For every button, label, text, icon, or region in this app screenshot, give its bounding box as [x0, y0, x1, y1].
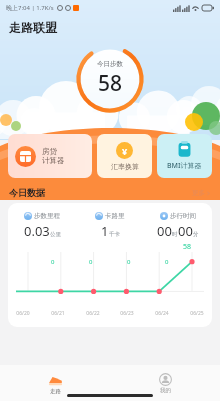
staticText: 计算器: [42, 156, 65, 165]
staticText: 千卡: [109, 231, 120, 238]
staticText: 今日数据: [9, 187, 45, 198]
staticText: 06/21: [51, 310, 65, 317]
button[interactable]: 更多: [192, 189, 211, 197]
staticText: 今日步数: [97, 60, 123, 68]
staticText: 公里: [50, 231, 61, 238]
staticText: 晚上7:04 | 1.7K/s: [6, 4, 54, 12]
staticText: 06/20: [16, 310, 30, 317]
staticText: 汇率换算: [111, 162, 139, 171]
staticText: 0: [89, 258, 93, 266]
staticText: 0: [165, 258, 169, 266]
staticText: 0.03: [24, 222, 50, 240]
button[interactable]: BMI计算器: [157, 134, 212, 178]
staticText: 房贷: [42, 147, 57, 156]
staticText: BMI计算器: [167, 161, 202, 171]
staticText: 1: [101, 222, 109, 240]
staticText: 步行时间: [170, 212, 196, 220]
button[interactable]: ¥: [97, 134, 152, 178]
staticText: 58: [183, 242, 192, 252]
staticText: 卡路里: [105, 212, 125, 220]
staticText: 06/25: [190, 310, 204, 317]
button[interactable]: 走路: [0, 365, 110, 401]
button[interactable]: 房贷: [8, 134, 92, 178]
staticText: 0: [51, 258, 55, 266]
staticText: 走路联盟: [9, 20, 57, 35]
staticText: ¥: [122, 145, 128, 157]
staticText: 00: [178, 222, 193, 240]
staticText: 00: [157, 222, 172, 240]
staticText: 时: [172, 231, 178, 238]
staticText: 06/24: [155, 310, 169, 317]
staticText: 06/22: [86, 310, 100, 317]
staticText: 走路: [50, 388, 61, 395]
staticText: 0: [127, 258, 131, 266]
staticText: 步数里程: [34, 212, 60, 220]
staticText: 58: [98, 69, 123, 98]
staticText: 我的: [160, 387, 171, 394]
staticText: 06/23: [120, 310, 134, 317]
button[interactable]: 我的: [110, 365, 220, 401]
staticText: 分: [193, 231, 199, 238]
staticText: 更多: [192, 189, 205, 197]
